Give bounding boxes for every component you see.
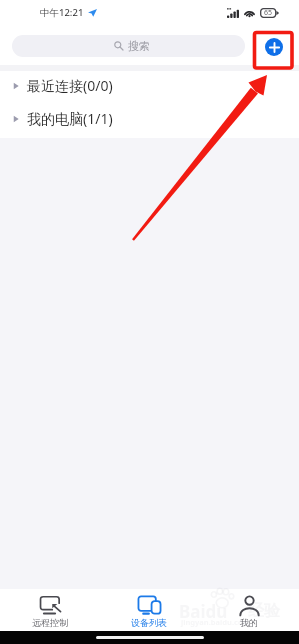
staticText: 经验 [248, 601, 280, 621]
button[interactable]: 设备列表 [99, 589, 199, 631]
staticText: 设备列表 [131, 617, 167, 628]
button[interactable]: 我的电脑(1/1) [0, 102, 299, 135]
staticText: 远程控制 [32, 617, 68, 628]
button[interactable]: 我的 [199, 589, 299, 631]
staticText: 我的 [240, 617, 258, 628]
button[interactable]: 最近连接(0/0) [0, 69, 299, 102]
staticText: Baidu [179, 600, 228, 623]
staticText: 我的电脑(1/1) [27, 109, 113, 128]
staticText: 中午12:21 [40, 6, 84, 19]
staticText: 65 [264, 8, 273, 18]
staticText: 最近连接(0/0) [27, 76, 113, 95]
button[interactable]: 添加设备 [265, 38, 283, 56]
staticText: 搜索 [128, 39, 150, 53]
button[interactable]: 搜索 [12, 35, 245, 57]
staticText: jingyan.baidu.com [181, 617, 250, 627]
button[interactable]: 远程控制 [0, 589, 99, 631]
